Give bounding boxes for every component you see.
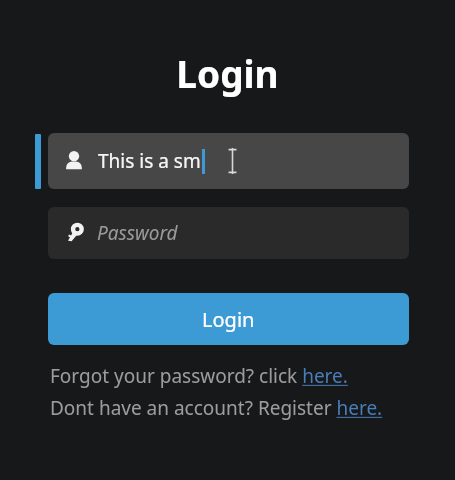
button[interactable]: Username [48, 133, 409, 189]
button[interactable]: Dont have an account? Register here. [50, 395, 383, 421]
staticText: Dont have an account? Register here. [50, 395, 383, 421]
staticText: Login [202, 306, 255, 333]
button[interactable]: Forgot your password? click here. [50, 363, 348, 389]
other: Username [62, 149, 86, 173]
staticText: Password [97, 220, 178, 246]
staticText: Login [0, 48, 455, 98]
staticText: Forgot your password? click here. [50, 363, 348, 389]
other: Password [62, 221, 86, 245]
staticText: This is a sm [98, 148, 201, 174]
button[interactable]: Password [48, 207, 409, 259]
button[interactable]: Login [48, 293, 409, 345]
